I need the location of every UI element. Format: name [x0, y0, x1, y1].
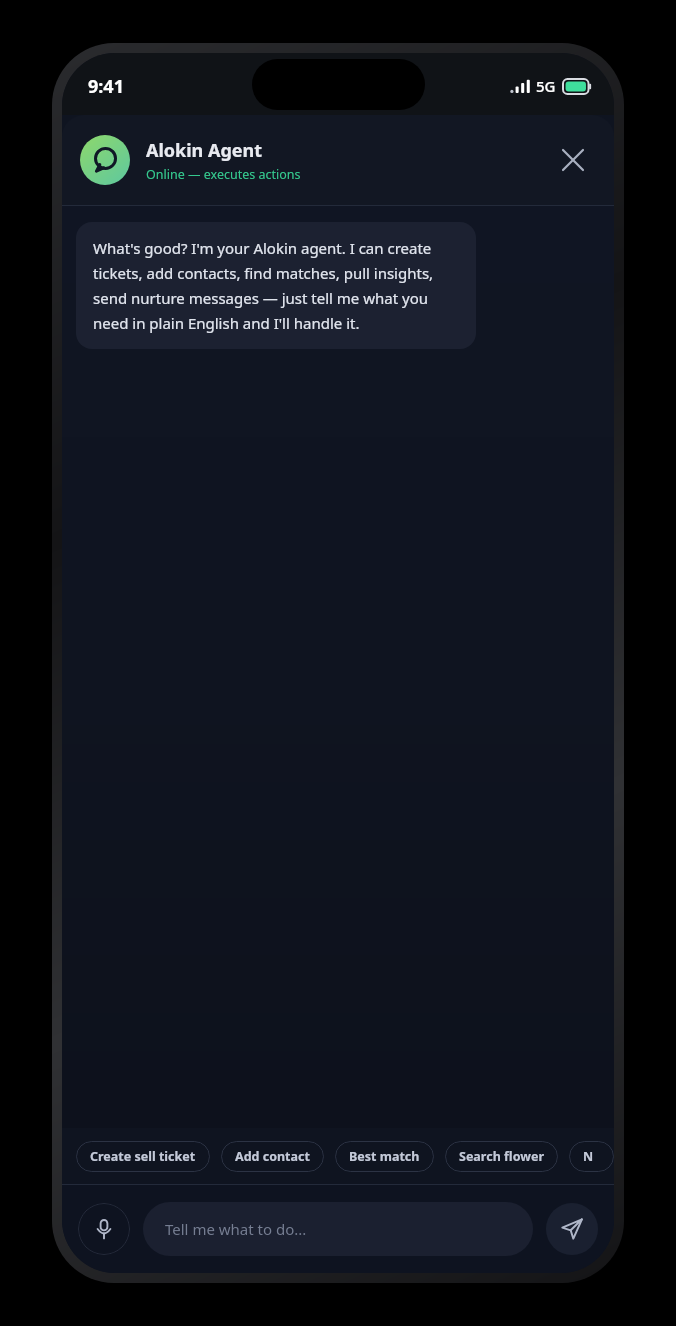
button[interactable]: Close — [550, 137, 596, 183]
button[interactable]: Nurture — [569, 1141, 614, 1172]
button[interactable]: Search flower — [445, 1141, 558, 1172]
staticText: Alokin Agent — [146, 138, 263, 163]
staticText: Add contact — [235, 1148, 310, 1165]
button[interactable]: Create sell ticket — [76, 1141, 210, 1172]
button[interactable]: Add contact — [221, 1141, 324, 1172]
staticText: Nurture — [583, 1148, 600, 1165]
staticText: 5G — [536, 76, 556, 96]
staticText: Create sell ticket — [90, 1148, 196, 1165]
staticText: Tell me what to do... — [165, 1219, 307, 1239]
button[interactable]: Tell me what to do... — [143, 1202, 533, 1256]
staticText: What's good? I'm your Alokin agent. I ca… — [93, 238, 459, 333]
staticText: Search flower — [459, 1148, 544, 1165]
staticText: 9:41 — [88, 74, 124, 99]
staticText: Online — executes actions — [146, 166, 301, 183]
button[interactable]: Send — [546, 1203, 598, 1255]
staticText: Best match — [349, 1148, 420, 1165]
button[interactable]: Voice input — [78, 1203, 130, 1255]
button[interactable]: Best match — [335, 1141, 434, 1172]
